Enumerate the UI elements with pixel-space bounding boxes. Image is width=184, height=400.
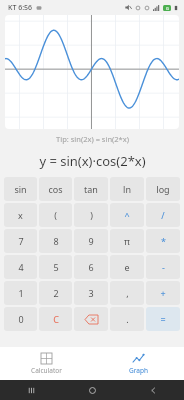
staticText: 0 bbox=[18, 313, 24, 325]
staticText: 2 bbox=[53, 287, 59, 299]
button[interactable]: ^ bbox=[110, 203, 144, 227]
button[interactable]: = bbox=[146, 307, 180, 331]
button[interactable]: 5 bbox=[39, 255, 72, 279]
staticText: e bbox=[124, 261, 130, 273]
staticText: = bbox=[160, 313, 166, 325]
staticText: ^ bbox=[124, 209, 130, 221]
staticText: 6 bbox=[88, 261, 94, 273]
button[interactable]: 6 bbox=[74, 255, 108, 279]
staticText: C bbox=[53, 313, 59, 325]
button[interactable]: 8 bbox=[39, 229, 72, 253]
button[interactable]: 4 bbox=[4, 255, 37, 279]
button[interactable]: 7 bbox=[4, 229, 37, 253]
staticText: 5 bbox=[53, 261, 59, 273]
staticText: 9 bbox=[88, 235, 94, 247]
button[interactable]: - bbox=[146, 255, 180, 279]
button[interactable]: . bbox=[110, 307, 144, 331]
button[interactable]: log bbox=[146, 177, 180, 201]
staticText: 3 bbox=[88, 287, 94, 299]
button[interactable]: x bbox=[4, 203, 37, 227]
staticText: x bbox=[18, 209, 23, 221]
staticText: 4 bbox=[18, 261, 24, 273]
button[interactable]: Calculator bbox=[0, 347, 92, 380]
button[interactable]: Delete bbox=[74, 307, 108, 331]
staticText: KT 6:56 bbox=[8, 3, 33, 13]
button[interactable]: , bbox=[110, 281, 144, 305]
staticText: cos bbox=[48, 183, 63, 195]
button[interactable]: cos bbox=[39, 177, 72, 201]
staticText: π bbox=[124, 235, 130, 247]
button[interactable]: e bbox=[110, 255, 144, 279]
staticText: log bbox=[156, 183, 170, 195]
staticText: . bbox=[126, 313, 129, 325]
staticText: 7 bbox=[18, 235, 24, 247]
button[interactable]: Graph bbox=[92, 347, 184, 380]
staticText: ) bbox=[90, 209, 93, 221]
staticText: Graph bbox=[129, 366, 148, 375]
staticText: + bbox=[160, 287, 166, 299]
button[interactable]: ) bbox=[74, 203, 108, 227]
staticText: tan bbox=[84, 183, 98, 195]
staticText: ( bbox=[54, 209, 57, 221]
staticText: sin bbox=[14, 183, 27, 195]
button[interactable]: / bbox=[146, 203, 180, 227]
staticText: G bbox=[166, 6, 169, 11]
staticText: Calculator bbox=[31, 366, 62, 375]
button[interactable]: 2 bbox=[39, 281, 72, 305]
staticText: 8 bbox=[53, 235, 59, 247]
staticText: 1 bbox=[18, 287, 24, 299]
button[interactable]: π bbox=[110, 229, 144, 253]
button[interactable]: 9 bbox=[74, 229, 108, 253]
staticText: / bbox=[161, 209, 165, 221]
staticText: * bbox=[161, 235, 166, 247]
button[interactable]: 1 bbox=[4, 281, 37, 305]
staticText: , bbox=[126, 287, 129, 299]
button[interactable]: ln bbox=[110, 177, 144, 201]
button[interactable]: tan bbox=[74, 177, 108, 201]
button[interactable]: * bbox=[146, 229, 180, 253]
button[interactable]: ( bbox=[39, 203, 72, 227]
button[interactable]: + bbox=[146, 281, 180, 305]
button[interactable]: 0 bbox=[4, 307, 37, 331]
staticText: ln bbox=[123, 183, 131, 195]
button[interactable]: C bbox=[39, 307, 72, 331]
button[interactable]: sin bbox=[4, 177, 37, 201]
staticText: - bbox=[162, 261, 165, 273]
staticText: Tip: sin(2x) = sin(2*x) bbox=[56, 134, 129, 144]
button[interactable]: 3 bbox=[74, 281, 108, 305]
staticText: y = sin(x)·cos(2*x) bbox=[39, 152, 146, 170]
